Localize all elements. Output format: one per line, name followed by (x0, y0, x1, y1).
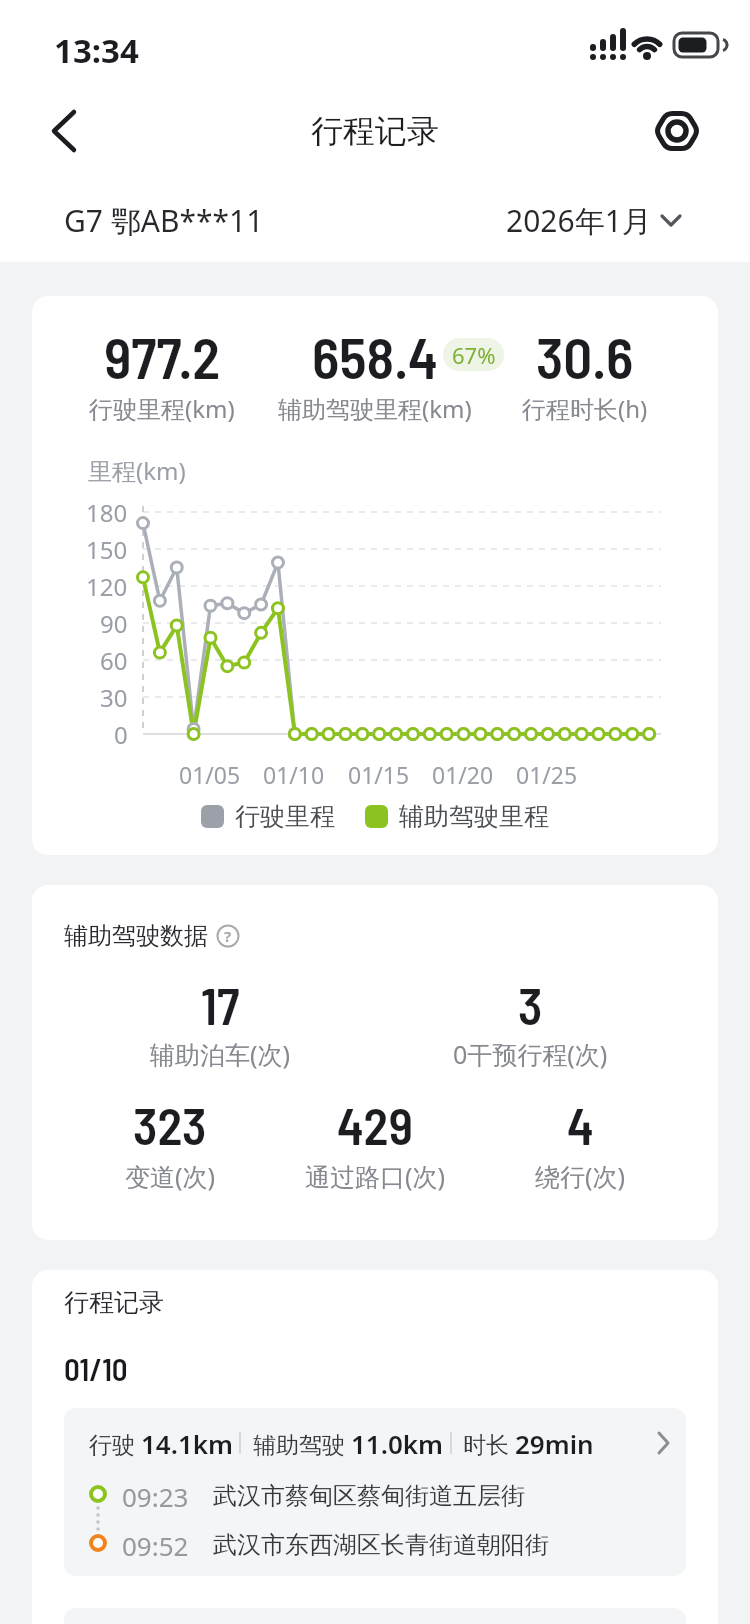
staticText: 14.1km (141, 1426, 234, 1461)
staticText: 11.0km (351, 1426, 444, 1461)
staticText: 变道(次) (125, 1159, 216, 1193)
staticText: 行程时长(h) (522, 392, 648, 424)
staticText: 通过路口(次) (305, 1159, 446, 1193)
button[interactable]: ? (216, 924, 240, 948)
staticText: 150 (86, 533, 128, 565)
staticText: 977.2 (104, 322, 221, 386)
button[interactable] (40, 105, 92, 157)
staticText: 辅助泊车(次) (150, 1037, 291, 1071)
staticText: 01/20 (432, 759, 494, 789)
staticText: 429 (337, 1094, 413, 1150)
staticText: 29min (515, 1426, 594, 1461)
staticText: 行程记录 (311, 111, 439, 151)
staticText: 60 (100, 644, 128, 676)
staticText: 323 (133, 1094, 207, 1150)
staticText: 时长 (463, 1428, 515, 1459)
staticText: 09:23 (122, 1479, 189, 1514)
staticText: 行程记录 (64, 1287, 164, 1318)
staticText: 辅助驾驶里程(km) (278, 392, 472, 424)
staticText: 绕行(次) (535, 1159, 626, 1193)
staticText: 行驶里程 (235, 801, 335, 832)
staticText: 里程(km) (88, 454, 186, 486)
staticText: 01/10 (263, 759, 325, 789)
staticText: 行驶 (89, 1428, 141, 1459)
staticText: 01/15 (348, 759, 410, 789)
staticText: 武汉市蔡甸区蔡甸街道五层街 (213, 1481, 525, 1511)
staticText: 01/25 (516, 759, 578, 789)
staticText: 658.4 (312, 322, 438, 386)
staticText: 0干预行程(次) (453, 1037, 608, 1071)
button[interactable]: 行驶 (64, 1408, 686, 1576)
staticText: 辅助驾驶 (253, 1428, 351, 1459)
staticText: 09:52 (122, 1528, 189, 1563)
staticText: 30.6 (536, 322, 634, 386)
staticText: 01/10 (64, 1350, 128, 1387)
staticText: 4 (567, 1094, 594, 1150)
staticText: 武汉市东西湖区长青街道朝阳街 (213, 1530, 549, 1560)
staticText: 30 (100, 681, 128, 713)
staticText: 3 (518, 974, 543, 1030)
staticText: 0 (114, 718, 128, 750)
staticText: 辅助驾驶里程 (399, 801, 549, 832)
staticText: 01/05 (179, 759, 241, 789)
staticText: 180 (86, 496, 128, 528)
staticText: 17 (201, 974, 240, 1030)
staticText: 13:34 (54, 28, 139, 68)
staticText: 67% (452, 340, 496, 370)
staticText: 辅助驾驶数据 (64, 921, 208, 951)
staticText: ? (224, 926, 232, 946)
staticText: G7 鄂AB***11 (64, 200, 264, 238)
staticText: 120 (86, 570, 128, 602)
button[interactable] (652, 106, 702, 156)
staticText: 2026年1月 (506, 200, 652, 238)
staticText: 行驶里程(km) (89, 392, 235, 424)
staticText: 90 (100, 607, 128, 639)
button[interactable]: 2026年1月 (500, 196, 686, 242)
